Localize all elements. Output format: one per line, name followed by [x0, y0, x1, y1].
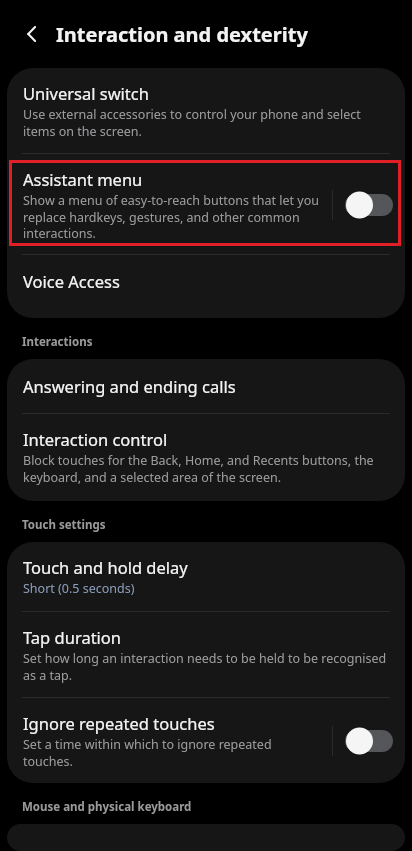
staticText: Show a menu of easy-to-reach buttons tha…: [23, 192, 324, 241]
button[interactable]: Ignore repeated touches: [7, 698, 405, 783]
button[interactable]: Tap duration: [7, 612, 405, 697]
staticText: Interactions: [22, 334, 93, 350]
button[interactable]: Assistant menu: [7, 154, 405, 254]
staticText: Ignore repeated touches: [23, 712, 215, 734]
staticText: Set a time within which to ignore repeat…: [23, 736, 324, 769]
button[interactable]: Toggle: [345, 190, 393, 220]
staticText: Touch settings: [22, 517, 106, 533]
staticText: Use external accessories to control your…: [23, 106, 393, 139]
staticText: Assistant menu: [23, 168, 143, 190]
button[interactable]: Voice Access: [7, 255, 405, 318]
button[interactable]: Toggle: [345, 726, 393, 756]
button[interactable]: Back: [10, 12, 54, 56]
staticText: Voice Access: [23, 270, 120, 292]
staticText: Set how long an interaction needs to be …: [23, 650, 393, 683]
staticText: Short (0.5 seconds): [23, 580, 135, 597]
staticText: Answering and ending calls: [23, 375, 236, 397]
staticText: Universal switch: [23, 82, 149, 104]
button[interactable]: Answering and ending calls: [7, 359, 405, 413]
button[interactable]: Touch and hold delay: [7, 542, 405, 611]
staticText: Mouse and physical keyboard: [22, 799, 192, 815]
staticText: Touch and hold delay: [23, 556, 188, 578]
button[interactable]: Universal switch: [7, 68, 405, 153]
staticText: Block touches for the Back, Home, and Re…: [23, 452, 393, 485]
staticText: Tap duration: [23, 626, 122, 648]
button[interactable]: Interaction control: [7, 414, 405, 501]
staticText: Interaction and dexterity: [56, 21, 308, 48]
staticText: Interaction control: [23, 428, 168, 450]
